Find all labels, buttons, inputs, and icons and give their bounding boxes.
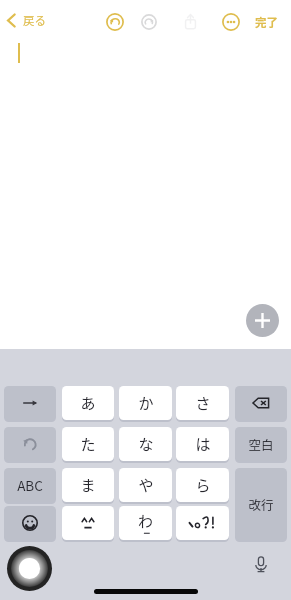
staticText: あ bbox=[80, 392, 96, 414]
button[interactable]: Undo bbox=[4, 427, 56, 461]
button[interactable]: 完了 bbox=[255, 14, 278, 31]
button[interactable]: Emoji bbox=[4, 506, 56, 540]
button[interactable]: 改行 bbox=[235, 468, 287, 540]
staticText: な bbox=[138, 433, 154, 455]
staticText: か bbox=[138, 392, 154, 414]
button[interactable]: た bbox=[62, 427, 114, 461]
staticText: 空白 bbox=[248, 435, 274, 453]
staticText: 改行 bbox=[248, 495, 274, 513]
staticText: 完了 bbox=[255, 14, 278, 31]
staticText: や bbox=[138, 474, 154, 496]
button[interactable]: Punctuation bbox=[176, 506, 229, 540]
staticText: わ bbox=[138, 510, 154, 532]
button[interactable]: Redo bbox=[141, 14, 157, 30]
staticText: ABC bbox=[17, 475, 43, 495]
button[interactable]: More bbox=[222, 13, 240, 31]
button[interactable]: わ bbox=[119, 506, 172, 540]
button[interactable]: Add bbox=[246, 304, 279, 337]
button[interactable]: ABC bbox=[4, 468, 56, 502]
button[interactable]: 空白 bbox=[235, 427, 287, 461]
staticText: ま bbox=[80, 474, 96, 496]
button[interactable]: あ bbox=[62, 386, 114, 420]
button[interactable]: さ bbox=[176, 386, 229, 420]
staticText: 戻る bbox=[23, 12, 46, 29]
button[interactable]: 戻る bbox=[7, 12, 46, 29]
button[interactable]: Delete bbox=[235, 386, 287, 420]
button[interactable]: Undo bbox=[106, 13, 124, 31]
staticText: た bbox=[80, 433, 96, 455]
button[interactable]: Emoticon bbox=[62, 506, 114, 540]
button[interactable]: ま bbox=[62, 468, 114, 502]
button[interactable]: Dictate bbox=[251, 554, 271, 574]
button[interactable]: や bbox=[119, 468, 172, 502]
staticText: ら bbox=[195, 474, 211, 496]
button[interactable]: Next bbox=[4, 386, 56, 420]
button[interactable]: Share bbox=[182, 13, 199, 30]
button[interactable]: は bbox=[176, 427, 229, 461]
staticText: は bbox=[195, 433, 211, 455]
staticText: さ bbox=[195, 392, 211, 414]
button[interactable]: ら bbox=[176, 468, 229, 502]
button[interactable]: な bbox=[119, 427, 172, 461]
button[interactable]: か bbox=[119, 386, 172, 420]
